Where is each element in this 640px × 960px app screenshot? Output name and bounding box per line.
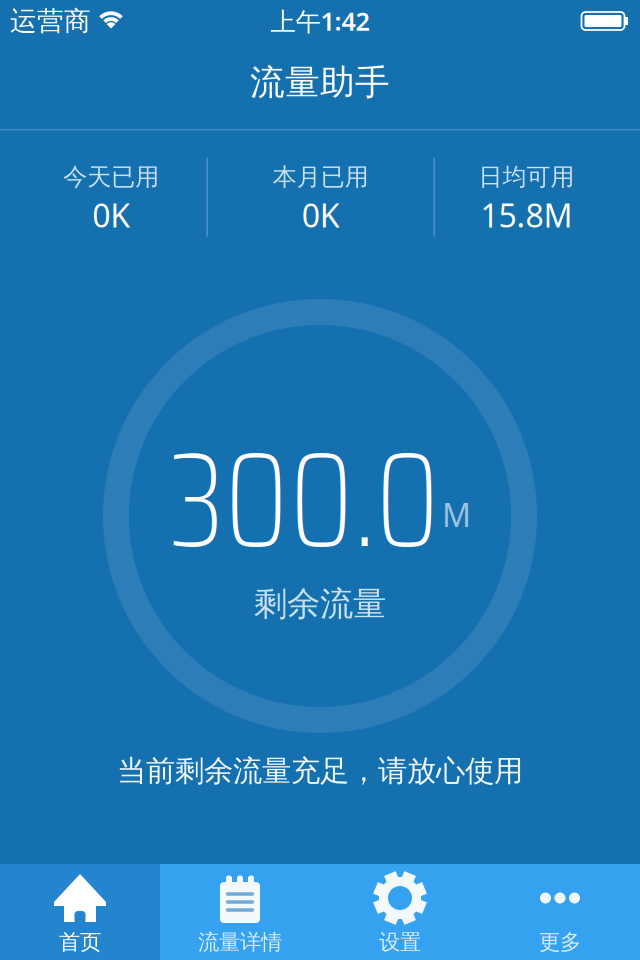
staticText: M [442, 493, 471, 536]
staticText: 今天已用 [63, 162, 159, 192]
staticText: 剩余流量 [254, 583, 386, 624]
staticText: 更多 [539, 929, 581, 955]
staticText: 上午1:42 [270, 4, 369, 38]
button[interactable]: 首页 [0, 864, 160, 960]
staticText: 流量详情 [198, 929, 282, 955]
staticText: 运营商 [10, 5, 91, 37]
staticText: 0K [92, 194, 130, 236]
staticText: 0K [302, 194, 340, 236]
button[interactable]: 更多 [480, 864, 640, 960]
button[interactable]: 流量详情 [160, 864, 320, 960]
staticText: 当前剩余流量充足，请放心使用 [117, 753, 523, 789]
staticText: 本月已用 [273, 162, 369, 192]
staticText: 流量助手 [250, 61, 390, 104]
staticText: 日均可用 [478, 162, 574, 192]
button[interactable]: 设置 [320, 864, 480, 960]
staticText: 首页 [59, 929, 101, 955]
staticText: 300.0 [169, 396, 440, 604]
staticText: 设置 [379, 929, 421, 955]
staticText: 15.8M [480, 194, 572, 236]
